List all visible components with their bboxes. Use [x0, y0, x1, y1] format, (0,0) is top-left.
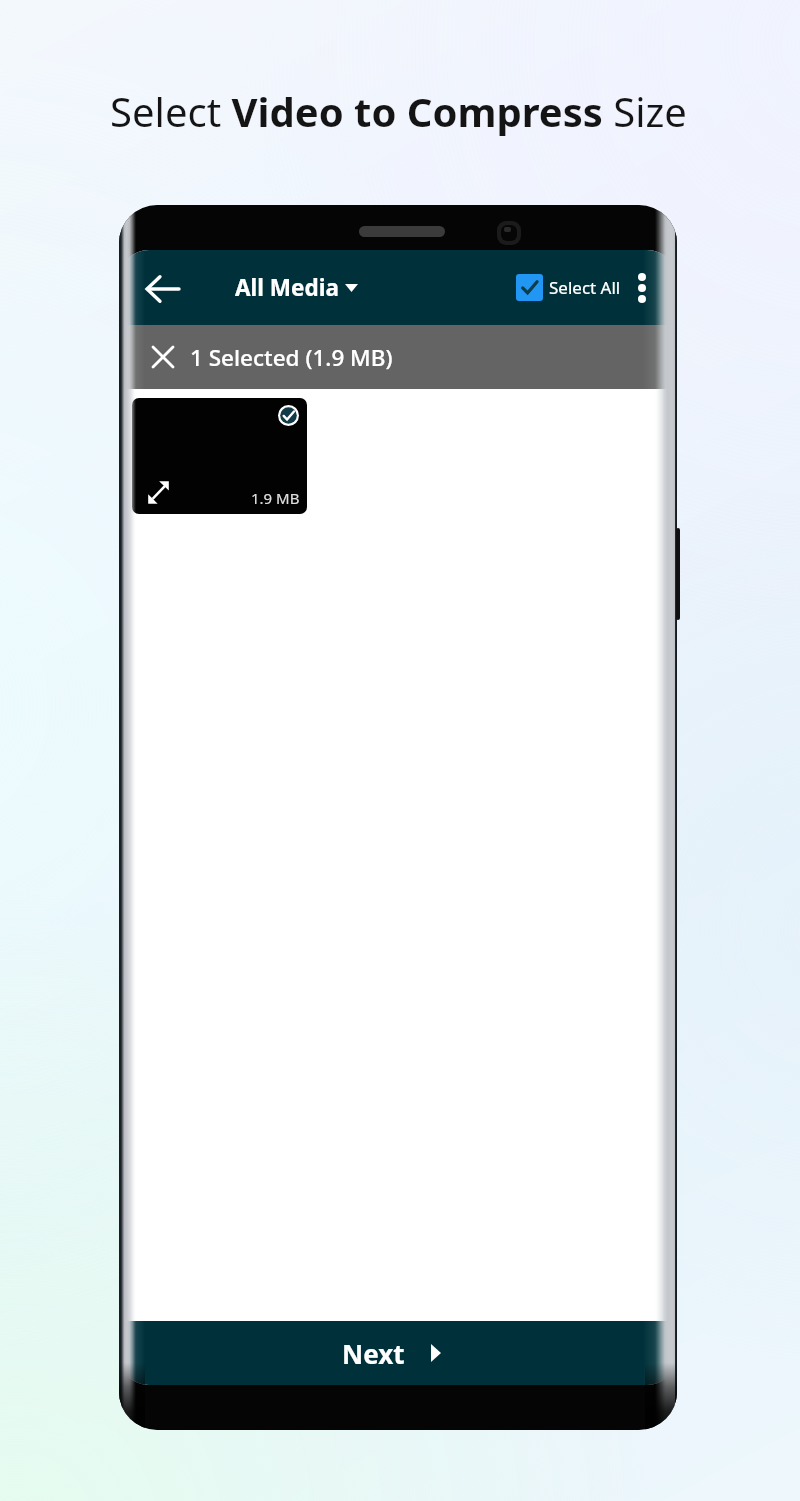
button[interactable]: All Media — [229, 250, 364, 325]
button[interactable]: Back — [139, 266, 184, 311]
button[interactable]: More options — [626, 272, 658, 304]
button[interactable]: Select All — [510, 250, 627, 325]
staticText: Select Video to Compress Size — [110, 84, 687, 138]
staticText: All Media — [235, 272, 339, 303]
staticText: 1 Selected (1.9 MB) — [190, 342, 393, 373]
staticText: Select All — [549, 276, 621, 299]
button[interactable]: Next — [119, 1321, 677, 1385]
button[interactable]: Clear selection — [147, 341, 179, 373]
staticText: 1.9 MB — [251, 488, 300, 508]
staticText: Next — [342, 1336, 405, 1371]
button[interactable]: Video 1.9 MB, selected — [132, 398, 307, 514]
